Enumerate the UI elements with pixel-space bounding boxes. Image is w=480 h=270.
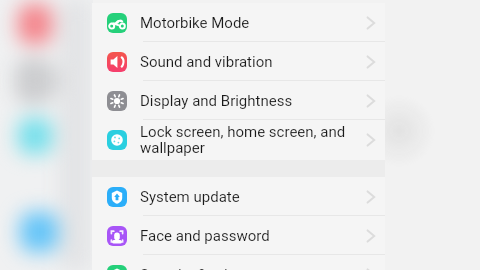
staticText: Security & privacy bbox=[140, 266, 361, 270]
button[interactable]: Motorbike Mode bbox=[92, 3, 385, 42]
staticText: Motorbike Mode bbox=[140, 14, 361, 32]
button[interactable]: Lock screen, home screen, and wallpaper bbox=[92, 120, 385, 160]
staticText: Display and Brightness bbox=[140, 92, 361, 110]
button[interactable]: Face and password bbox=[92, 216, 385, 255]
button[interactable]: Security & privacy bbox=[92, 255, 385, 270]
staticText: System update bbox=[140, 188, 361, 206]
staticText: Face and password bbox=[140, 227, 361, 245]
button[interactable]: Sound and vibration bbox=[92, 42, 385, 81]
staticText: Lock screen, home screen, and wallpaper bbox=[140, 123, 361, 157]
button[interactable]: Display and Brightness bbox=[92, 81, 385, 120]
button[interactable]: System update bbox=[92, 177, 385, 216]
staticText: Sound and vibration bbox=[140, 53, 361, 71]
